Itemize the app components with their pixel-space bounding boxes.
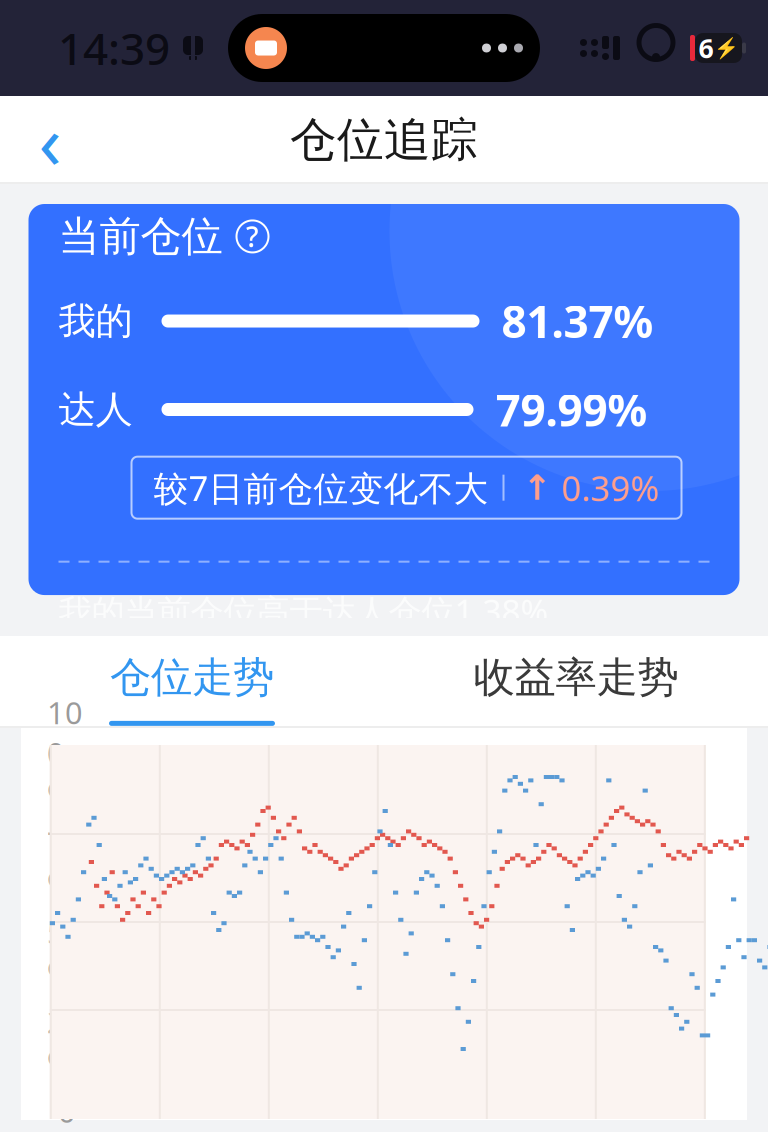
staticText: ‹ xyxy=(38,90,61,190)
staticText: 0.39% xyxy=(561,465,659,511)
staticText: 50 % xyxy=(47,912,83,993)
staticText: 较7日前仓位变化不大 xyxy=(153,465,488,511)
staticText: 100 % xyxy=(47,692,83,814)
staticText: 25 % xyxy=(47,1001,83,1082)
staticText: 6 xyxy=(698,30,713,66)
staticText: ? xyxy=(246,218,259,255)
button[interactable]: Back xyxy=(14,97,86,183)
staticText: 79.99% xyxy=(495,380,647,439)
staticText: 0 % xyxy=(58,1090,83,1132)
staticText: 我的 xyxy=(58,298,132,344)
staticText: 当前仓位 xyxy=(58,211,222,262)
staticText: 14:39 xyxy=(58,19,170,77)
staticText: 仓位走势 xyxy=(110,652,274,703)
staticText: 达人 xyxy=(58,386,132,432)
button[interactable]: 关于当前仓位 xyxy=(236,220,268,252)
button[interactable]: 收益率走势 xyxy=(384,628,768,736)
staticText: ↑ xyxy=(522,468,551,507)
button[interactable]: 仓位走势 xyxy=(0,628,384,736)
staticText: 75 % xyxy=(47,822,83,904)
staticText: 收益率走势 xyxy=(473,652,678,703)
staticText: 81.37% xyxy=(501,292,653,350)
staticText: 仓位追踪 xyxy=(290,111,478,169)
staticText: ⚡ xyxy=(713,37,738,59)
staticText: 我的当前仓位高于达人仓位1.38% xyxy=(58,589,548,633)
